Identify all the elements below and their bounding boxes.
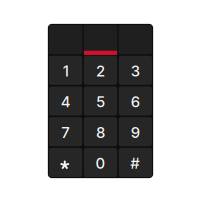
staticText: 4	[61, 93, 71, 111]
button[interactable]: 9	[119, 117, 152, 146]
staticText: 2	[96, 62, 105, 80]
staticText: 7	[61, 123, 70, 142]
button[interactable]: #	[119, 148, 152, 177]
button[interactable]: Star	[49, 148, 82, 177]
staticText: 8	[96, 123, 105, 142]
staticText: 5	[96, 93, 105, 111]
staticText: 0	[95, 154, 105, 172]
staticText: 1	[63, 62, 69, 80]
staticText: 3	[131, 62, 140, 80]
button[interactable]: 0	[84, 148, 117, 177]
staticText: #	[130, 154, 140, 172]
button[interactable]: 7	[49, 117, 82, 146]
button[interactable]: 3	[119, 56, 152, 85]
staticText: 9	[131, 123, 140, 142]
button[interactable]: 5	[84, 86, 117, 116]
button[interactable]: 6	[119, 86, 152, 116]
button[interactable]: 1	[49, 56, 82, 85]
button[interactable]: 8	[84, 117, 117, 146]
button[interactable]: 2	[84, 56, 117, 85]
button[interactable]: 4	[49, 86, 82, 116]
staticText: 6	[131, 93, 140, 111]
